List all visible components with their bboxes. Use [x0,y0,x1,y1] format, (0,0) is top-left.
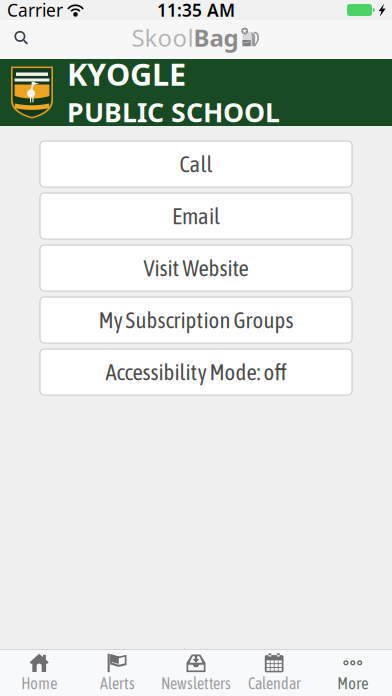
button[interactable]: More [314,650,392,696]
staticText: Alerts [100,674,135,693]
staticText: Calendar [248,674,301,693]
button[interactable]: Home [0,650,78,696]
button[interactable]: Newsletters [157,650,235,696]
staticText: Bag [193,22,238,53]
button[interactable]: Search [0,22,42,56]
staticText: Email [172,203,220,229]
staticText: PUBLIC SCHOOL [67,94,280,130]
staticText: More [337,674,368,693]
staticText: Newsletters [161,674,231,693]
staticText: Visit Website [143,255,248,281]
button[interactable]: Calendar [235,650,314,696]
staticText: Carrier [7,0,63,21]
staticText: Accessibility Mode: off [105,359,286,385]
button[interactable]: Call [40,141,352,187]
staticText: 11:35 AM [157,0,235,21]
button[interactable]: Accessibility Mode: off [40,349,352,395]
staticText: Call [179,151,212,177]
button[interactable]: Visit Website [40,245,352,291]
staticText: My Subscription Groups [98,307,293,333]
staticText: Skool [131,22,193,53]
button[interactable]: Alerts [78,650,157,696]
staticText: Home [21,674,57,693]
button[interactable]: My Subscription Groups [40,297,352,343]
button[interactable]: Email [40,193,352,239]
staticText: KYOGLE [67,53,186,94]
